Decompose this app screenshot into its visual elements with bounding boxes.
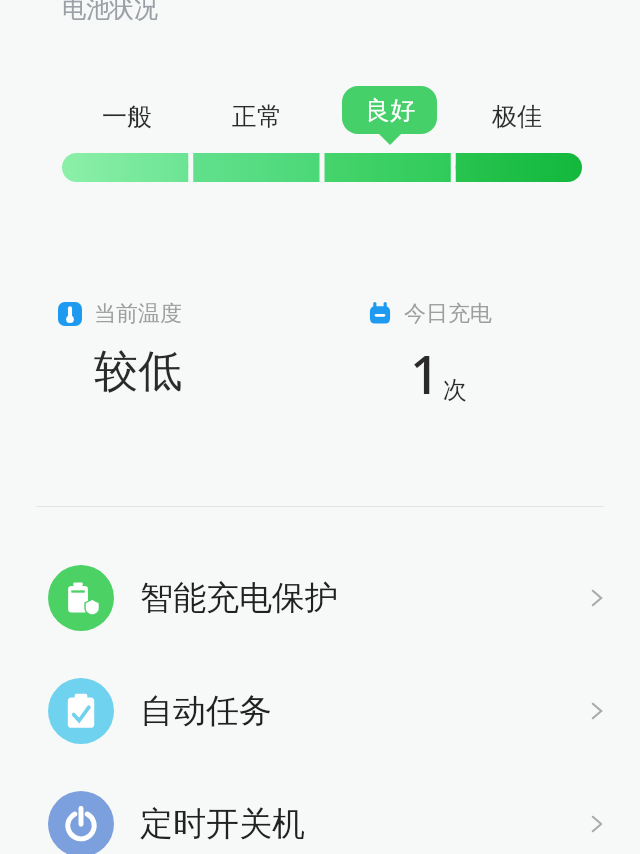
button[interactable]: 定时开关机 <box>0 791 640 854</box>
button[interactable]: 良好 <box>342 86 437 134</box>
staticText: 今日充电 <box>404 300 492 328</box>
staticText: 电池状况 <box>62 0 158 24</box>
staticText: 次 <box>443 375 467 405</box>
staticText: 正常 <box>232 101 282 132</box>
staticText: 极佳 <box>492 101 542 132</box>
other: 智能充电保护 <box>582 583 612 613</box>
button[interactable]: 一般 <box>82 96 172 136</box>
button[interactable]: 智能充电保护 <box>0 565 640 631</box>
staticText: 较低 <box>94 344 182 399</box>
staticText: 当前温度 <box>94 300 182 328</box>
staticText: 自动任务 <box>140 690 272 732</box>
staticText: 良好 <box>365 95 415 126</box>
button[interactable]: 自动任务 <box>0 678 640 744</box>
button[interactable]: 极佳 <box>472 96 562 136</box>
staticText: 智能充电保护 <box>140 577 338 619</box>
staticText: 一般 <box>102 101 152 132</box>
other: 自动任务 <box>582 696 612 726</box>
button[interactable]: 正常 <box>212 96 302 136</box>
staticText: 定时开关机 <box>140 803 305 845</box>
other: 定时开关机 <box>582 809 612 839</box>
staticText: 1 <box>410 338 440 409</box>
